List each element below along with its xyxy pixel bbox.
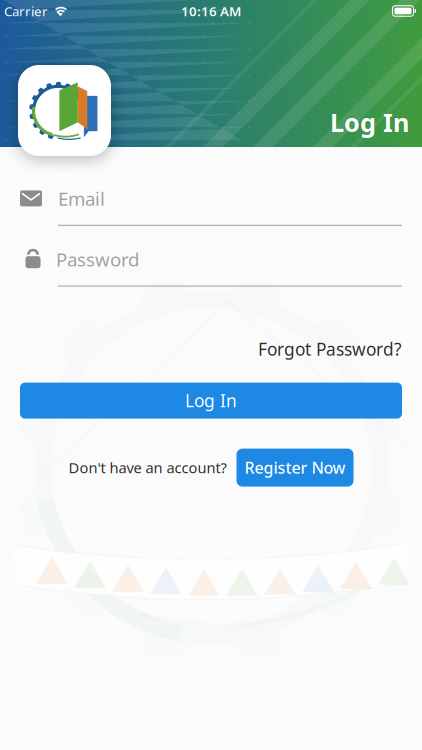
button[interactable]: Email (20, 186, 402, 226)
button[interactable]: Password (20, 247, 402, 287)
staticText: 10:16 AM (181, 2, 241, 20)
staticText: Carrier (4, 2, 48, 20)
staticText: Log In (185, 389, 237, 412)
staticText: Password (56, 247, 139, 272)
button[interactable]: Log In (20, 383, 402, 419)
button[interactable]: Register Now (236, 449, 353, 487)
button[interactable]: Forgot Password? (258, 338, 402, 361)
staticText: Forgot Password? (258, 338, 402, 361)
staticText: Don't have an account? (68, 458, 226, 477)
staticText: Email (58, 186, 105, 211)
staticText: Register Now (244, 457, 345, 478)
staticText: Log In (330, 105, 409, 139)
